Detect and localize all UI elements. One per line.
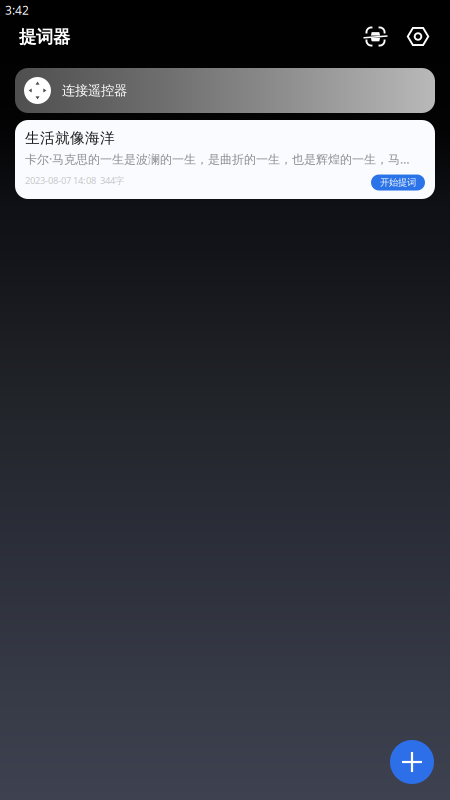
staticText: 卡尔·马克思的一生是波澜的一生，是曲折的一生，也是辉煌的一生，马…: [25, 151, 409, 167]
staticText: 3:42: [5, 2, 29, 18]
button[interactable]: 设置: [398, 16, 438, 56]
staticText: 生活就像海洋: [25, 129, 115, 147]
staticText: 2023-08-07 14:08 344字: [25, 174, 124, 187]
button[interactable]: 连接遥控器: [15, 68, 435, 113]
staticText: 开始提词: [380, 177, 416, 188]
button[interactable]: 新建提词: [390, 740, 434, 784]
button[interactable]: 生活就像海洋: [15, 120, 435, 199]
staticText: 提词器: [19, 26, 70, 48]
staticText: 连接遥控器: [62, 82, 127, 99]
button[interactable]: 扫描文本: [355, 16, 395, 56]
